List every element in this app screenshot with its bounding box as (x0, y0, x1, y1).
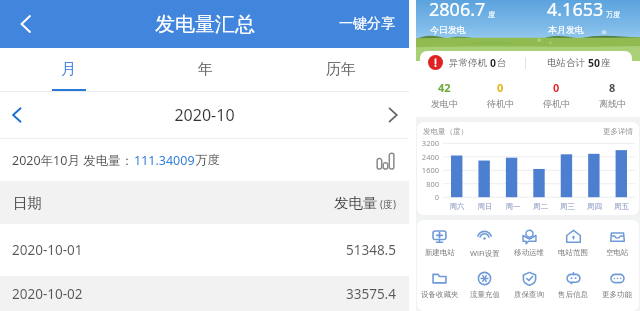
staticText: 发电量（度） (423, 127, 468, 136)
staticText: 111.34009 (134, 152, 195, 169)
button[interactable]: 异常停机 (420, 51, 525, 74)
staticText: 2020年10月 发电量： (12, 152, 134, 169)
staticText: 异常停机 (449, 56, 490, 69)
button[interactable]: 移动运维 (507, 222, 551, 263)
button[interactable]: 电站合计 (526, 51, 632, 74)
staticText: 售后信息 (558, 290, 588, 299)
staticText: 周二 (527, 202, 554, 211)
staticText: WiFi设置 (470, 248, 500, 258)
button[interactable]: 售后信息 (551, 263, 595, 305)
staticText: 2020-10-01 (12, 241, 83, 259)
button[interactable]: 更多详情 (603, 127, 633, 136)
button[interactable]: 2020-10-01 (0, 224, 409, 276)
staticText: 日期 (13, 194, 42, 212)
button[interactable]: 0 (472, 77, 528, 111)
staticText: 33575.4 (346, 285, 396, 303)
button[interactable]: Next month (376, 92, 409, 138)
staticText: 0 (417, 192, 439, 202)
button[interactable]: 更多功能 (595, 263, 639, 305)
staticText: 51348.5 (346, 241, 396, 259)
staticText: 更多详情 (603, 127, 633, 136)
button[interactable]: Previous month (0, 92, 33, 138)
staticText: 800 (417, 179, 439, 189)
staticText: 周五 (608, 202, 635, 211)
button[interactable]: 质保查询 (507, 263, 551, 305)
button[interactable]: 42 (416, 77, 472, 111)
staticText: 电站合计 (547, 56, 588, 69)
staticText: 设备收藏夹 (421, 290, 459, 299)
button[interactable]: 月 (0, 48, 137, 91)
button[interactable]: 空电站 (595, 222, 639, 263)
staticText: 周三 (554, 202, 581, 211)
staticText: 1600 (417, 165, 439, 175)
staticText: 历年 (326, 60, 356, 79)
staticText: 电站范围 (558, 248, 588, 257)
staticText: 待机中 (487, 98, 514, 109)
staticText: 4.1653 (547, 0, 604, 22)
staticText: 空电站 (606, 248, 629, 257)
staticText: 0 (497, 80, 504, 95)
staticText: 周六 (443, 202, 471, 211)
staticText: 更多功能 (602, 290, 632, 299)
button[interactable]: WiFi设置 (462, 222, 507, 263)
staticText: 8 (609, 80, 616, 95)
staticText: 质保查询 (514, 290, 544, 299)
staticText: 新建电站 (425, 248, 455, 257)
staticText: 发电量汇总 (155, 12, 255, 37)
staticText: 万度 (606, 10, 620, 19)
button[interactable]: 0 (528, 77, 584, 111)
staticText: 3200 (417, 138, 439, 148)
staticText: 周日 (471, 202, 499, 211)
staticText: 2020-10-02 (12, 285, 83, 303)
staticText: 0 (553, 80, 560, 95)
button[interactable]: Chart view (376, 151, 395, 170)
button[interactable]: 年 (137, 48, 273, 91)
staticText: 年 (198, 60, 213, 79)
button[interactable]: 历年 (273, 48, 409, 91)
staticText: 今日发电 (430, 24, 466, 35)
button[interactable]: 新建电站 (417, 222, 462, 263)
button[interactable]: 一键分享 (339, 0, 409, 48)
staticText: 2806.7 (429, 0, 486, 22)
button[interactable]: 8 (584, 77, 640, 111)
staticText: 周四 (581, 202, 608, 211)
staticText: 2020-10 (33, 104, 376, 126)
button[interactable]: Back (0, 0, 54, 48)
staticText: 周一 (499, 202, 527, 211)
staticText: 流量充值 (470, 290, 500, 299)
staticText: 50 (588, 56, 601, 70)
staticText: 移动运维 (514, 248, 544, 257)
button[interactable]: 电站范围 (551, 222, 595, 263)
staticText: 本月发电 (548, 24, 584, 35)
staticText: (度) (380, 197, 396, 211)
staticText: 0 (490, 56, 497, 70)
staticText: 一键分享 (339, 15, 395, 33)
button[interactable]: 2020-10-02 (0, 276, 409, 311)
button[interactable]: 流量充值 (462, 263, 507, 305)
button[interactable]: 设备收藏夹 (417, 263, 462, 305)
staticText: 万度 (195, 152, 220, 168)
staticText: 42 (438, 80, 451, 95)
staticText: 发电量 (334, 194, 378, 212)
staticText: 度 (488, 10, 495, 19)
staticText: 发电中 (431, 98, 458, 109)
staticText: 停机中 (543, 98, 570, 109)
staticText: 2400 (417, 152, 439, 162)
staticText: 离线中 (599, 98, 626, 109)
staticText: 月 (61, 60, 76, 79)
staticText: 座 (601, 57, 611, 69)
staticText: 台 (497, 57, 507, 69)
